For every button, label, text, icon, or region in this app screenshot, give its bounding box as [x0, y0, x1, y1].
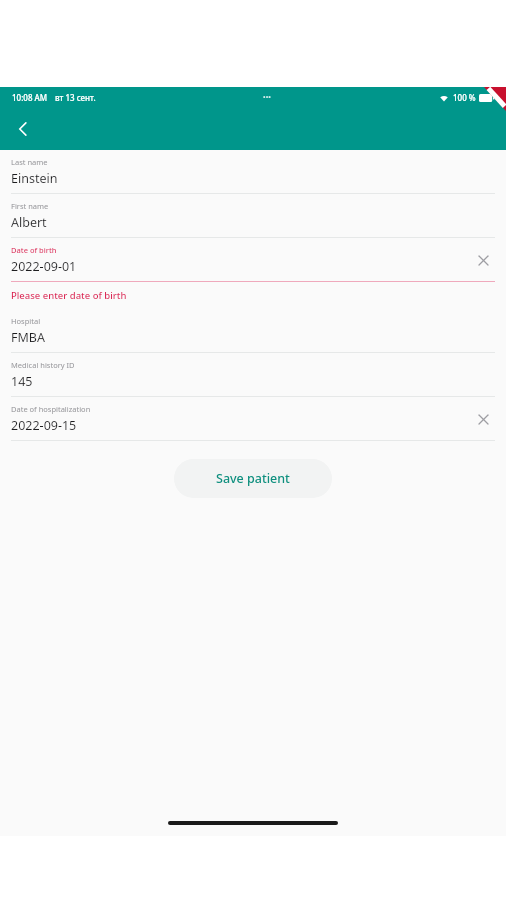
staticText: Please enter date of birth: [11, 289, 127, 302]
staticText: Date of hospitalization: [11, 404, 91, 414]
button[interactable]: Back: [6, 112, 40, 146]
button[interactable]: Clear Date of birth: [471, 248, 495, 272]
staticText: Save patient: [216, 470, 290, 487]
staticText: Albert: [11, 214, 47, 231]
button[interactable]: Clear Date of hospitalization: [471, 407, 495, 431]
button[interactable]: First name: [0, 194, 506, 238]
button[interactable]: Hospital: [0, 309, 506, 353]
staticText: FMBA: [11, 329, 45, 346]
staticText: First name: [11, 201, 49, 211]
staticText: Hospital: [11, 316, 41, 326]
staticText: 2022-09-01: [11, 258, 77, 275]
staticText: Einstein: [11, 170, 58, 187]
staticText: Medical history ID: [11, 360, 75, 370]
button[interactable]: Last name: [0, 150, 506, 194]
staticText: вт 13 сент.: [55, 92, 96, 103]
staticText: 2022-09-15: [11, 417, 77, 434]
staticText: Date of birth: [11, 245, 57, 255]
button[interactable]: Date of birth: [0, 238, 506, 282]
button[interactable]: Save patient: [174, 459, 332, 498]
staticText: 145: [11, 373, 33, 390]
staticText: Last name: [11, 157, 48, 167]
staticText: 10:08 AM: [12, 92, 48, 103]
staticText: •••: [263, 93, 271, 103]
button[interactable]: Medical history ID: [0, 353, 506, 397]
staticText: 100 %: [453, 92, 476, 103]
button[interactable]: Date of hospitalization: [0, 397, 506, 441]
